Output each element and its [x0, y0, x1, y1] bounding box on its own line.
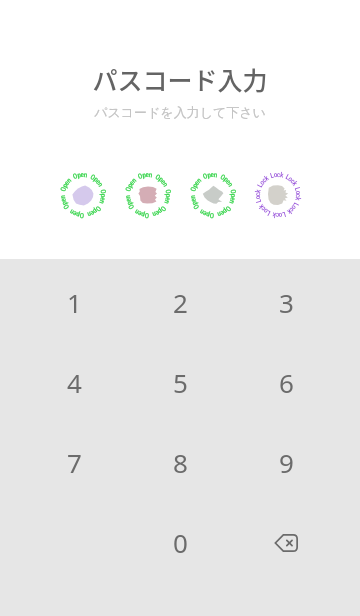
staticText: 1	[67, 285, 82, 320]
button[interactable]: 5	[127, 342, 233, 422]
other: Backspace	[274, 534, 298, 552]
button[interactable]: 2	[127, 262, 233, 342]
staticText: 0	[173, 525, 188, 560]
button[interactable]: 7	[21, 422, 127, 502]
staticText: 9	[279, 445, 294, 480]
button[interactable]: 3	[233, 262, 339, 342]
staticText: パスコードを入力して下さい	[0, 104, 360, 120]
staticText: 7	[67, 445, 82, 480]
button[interactable]: Backspace	[233, 502, 339, 582]
staticText: 3	[279, 285, 294, 320]
staticText: 8	[173, 445, 188, 480]
staticText: 4	[67, 365, 82, 400]
button[interactable]	[123, 170, 173, 220]
button[interactable]: 0	[127, 502, 233, 582]
button[interactable]	[253, 170, 303, 220]
button[interactable]	[188, 170, 238, 220]
button[interactable]: 4	[21, 342, 127, 422]
button[interactable]: 9	[233, 422, 339, 502]
button[interactable]: 8	[127, 422, 233, 502]
staticText: 2	[173, 285, 188, 320]
staticText: 5	[173, 365, 188, 400]
button[interactable]: 6	[233, 342, 339, 422]
button[interactable]: 1	[21, 262, 127, 342]
staticText: 6	[279, 365, 294, 400]
staticText: パスコード入力	[0, 61, 360, 97]
button[interactable]	[58, 170, 108, 220]
